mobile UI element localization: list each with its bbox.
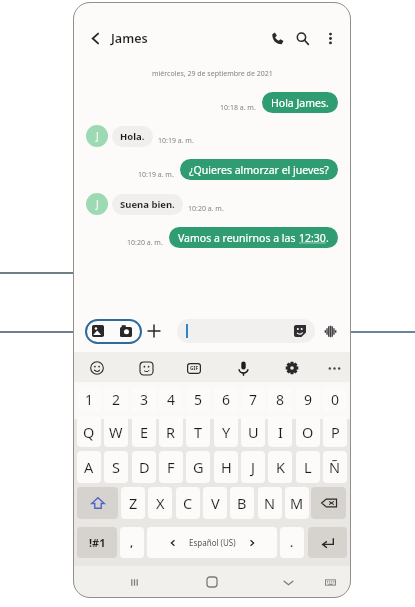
button[interactable]: Y — [214, 416, 238, 447]
button[interactable]: 3 — [132, 387, 156, 412]
staticText: X — [156, 493, 165, 513]
staticText: F — [167, 457, 175, 477]
button[interactable]: Recents — [122, 570, 146, 594]
button[interactable]: G — [186, 451, 210, 483]
button[interactable]: Q — [77, 416, 101, 447]
button[interactable]: Backspace — [311, 487, 346, 519]
button[interactable]: Español (US) — [147, 527, 277, 558]
button[interactable]: B — [230, 487, 254, 519]
staticText: I — [278, 422, 283, 442]
button[interactable]: J — [241, 451, 265, 483]
button[interactable]: . — [280, 527, 304, 558]
button[interactable]: Z — [121, 487, 145, 519]
button[interactable]: U — [241, 416, 265, 447]
button[interactable]: E — [132, 416, 156, 447]
staticText: 10:20 a. m. — [127, 238, 163, 248]
button[interactable]: W — [104, 416, 128, 447]
staticText: A — [84, 457, 94, 477]
button[interactable]: Stickers — [135, 357, 157, 379]
button[interactable]: More options — [317, 25, 343, 51]
button[interactable]: Gallery — [87, 320, 109, 342]
staticText: J — [251, 457, 255, 477]
staticText: D — [139, 457, 150, 477]
button[interactable]: Hola James. — [262, 92, 338, 113]
staticText: U — [248, 422, 259, 442]
button[interactable]: K — [268, 451, 292, 483]
button[interactable]: Voice message — [319, 320, 341, 342]
button[interactable]: , — [120, 527, 144, 558]
button[interactable]: ¿Quieres almorzar el jueves? — [180, 159, 338, 180]
staticText: 10:18 a. m. — [220, 103, 256, 113]
staticText: GIF — [190, 365, 199, 372]
button[interactable]: 7 — [241, 387, 265, 412]
staticText: 0 — [331, 390, 340, 409]
staticText: 2 — [112, 390, 121, 409]
button[interactable]: V — [203, 487, 227, 519]
button[interactable]: GIF — [183, 357, 205, 379]
button[interactable]: Emoji — [86, 357, 108, 379]
button[interactable]: Suena bien. — [112, 194, 183, 215]
button[interactable]: 1 — [77, 387, 101, 412]
staticText: Hola. — [120, 130, 145, 143]
button[interactable]: Voice input — [232, 357, 254, 379]
button[interactable]: Add attachment — [143, 320, 165, 342]
staticText: 6 — [222, 390, 231, 409]
staticText: J — [96, 129, 99, 143]
button[interactable]: X — [148, 487, 172, 519]
staticText: 8 — [276, 390, 285, 409]
button[interactable]: Search — [289, 25, 315, 51]
staticText: 3 — [140, 390, 149, 409]
button[interactable]: L — [296, 451, 320, 483]
staticText: Vamos a reunirnos a las — [178, 231, 299, 245]
button[interactable]: 6 — [214, 387, 238, 412]
button[interactable]: T — [186, 416, 210, 447]
button[interactable]: I — [268, 416, 292, 447]
button[interactable]: R — [159, 416, 183, 447]
staticText: B — [237, 493, 247, 513]
button[interactable]: 9 — [296, 387, 320, 412]
button[interactable]: Call — [264, 25, 290, 51]
staticText: 12:30 — [299, 231, 326, 245]
staticText: G — [193, 457, 204, 477]
button[interactable]: Ñ — [323, 451, 347, 483]
staticText: H — [221, 457, 232, 477]
button[interactable]: Back — [82, 25, 108, 51]
button[interactable]: 2 — [104, 387, 128, 412]
button[interactable]: A — [77, 451, 101, 483]
button[interactable]: H — [214, 451, 238, 483]
button[interactable]: S — [104, 451, 128, 483]
button[interactable]: !#1 — [77, 527, 117, 558]
staticText: 10:19 a. m. — [158, 136, 194, 146]
button[interactable]: D — [132, 451, 156, 483]
button[interactable]: O — [296, 416, 320, 447]
button[interactable]: M — [285, 487, 309, 519]
staticText: Z — [129, 493, 138, 513]
staticText: N — [264, 493, 276, 513]
button[interactable]: Hola. — [112, 126, 153, 147]
staticText: , — [130, 535, 134, 550]
button[interactable]: Enter — [308, 527, 347, 558]
button[interactable]: Hide keyboard — [320, 572, 340, 592]
staticText: 9 — [304, 390, 313, 409]
button[interactable]: Back — [276, 570, 300, 594]
button[interactable]: Vamos a reunirnos a las — [169, 227, 338, 248]
staticText: Ñ — [329, 457, 341, 477]
button[interactable] — [177, 319, 315, 343]
button[interactable]: Keyboard settings — [281, 357, 303, 379]
button[interactable]: P — [323, 416, 347, 447]
staticText: miércoles, 29 de septiembre de 2021 — [152, 69, 273, 79]
staticText: K — [276, 457, 285, 477]
button[interactable]: Camera — [115, 320, 137, 342]
button[interactable]: 8 — [268, 387, 292, 412]
button[interactable]: N — [258, 487, 282, 519]
button[interactable]: 5 — [186, 387, 210, 412]
button[interactable]: Shift — [77, 487, 118, 519]
button[interactable]: Home — [200, 570, 224, 594]
button[interactable]: 4 — [159, 387, 183, 412]
button[interactable]: F — [159, 451, 183, 483]
button[interactable]: 0 — [323, 387, 347, 412]
staticText: W — [109, 422, 123, 442]
button[interactable]: More — [323, 357, 345, 379]
staticText: O — [302, 422, 314, 442]
button[interactable]: C — [176, 487, 200, 519]
